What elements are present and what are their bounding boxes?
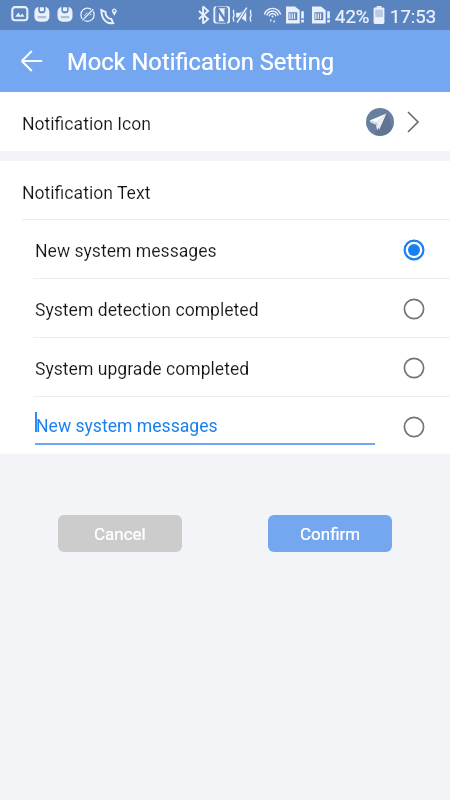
staticText: Confirm: [300, 524, 361, 544]
button[interactable]: New system messages: [0, 220, 450, 278]
button[interactable]: New system messages: [0, 397, 450, 454]
staticText: New system messages: [35, 241, 217, 262]
other: Option: [402, 356, 426, 380]
staticText: 42%: [335, 6, 370, 28]
staticText: New system messages: [36, 416, 218, 437]
button[interactable]: Cancel: [58, 515, 182, 552]
staticText: 17:53: [390, 6, 437, 28]
staticText: Mock Notification Setting: [67, 48, 335, 76]
button[interactable]: Back: [10, 39, 54, 83]
staticText: Notification Icon: [22, 114, 152, 135]
staticText: System upgrade completed: [35, 359, 250, 380]
staticText: System detection completed: [35, 300, 259, 321]
other: Selected option: [402, 238, 426, 262]
button[interactable]: Confirm: [268, 515, 392, 552]
staticText: Cancel: [94, 524, 146, 544]
other: Option: [402, 415, 426, 439]
button[interactable]: Notification Icon: [0, 92, 450, 151]
other: Choose notification icon: [399, 108, 427, 136]
other: Option: [402, 297, 426, 321]
staticText: Notification Text: [22, 183, 151, 204]
button[interactable]: System detection completed: [0, 279, 450, 337]
button[interactable]: System upgrade completed: [0, 338, 450, 396]
